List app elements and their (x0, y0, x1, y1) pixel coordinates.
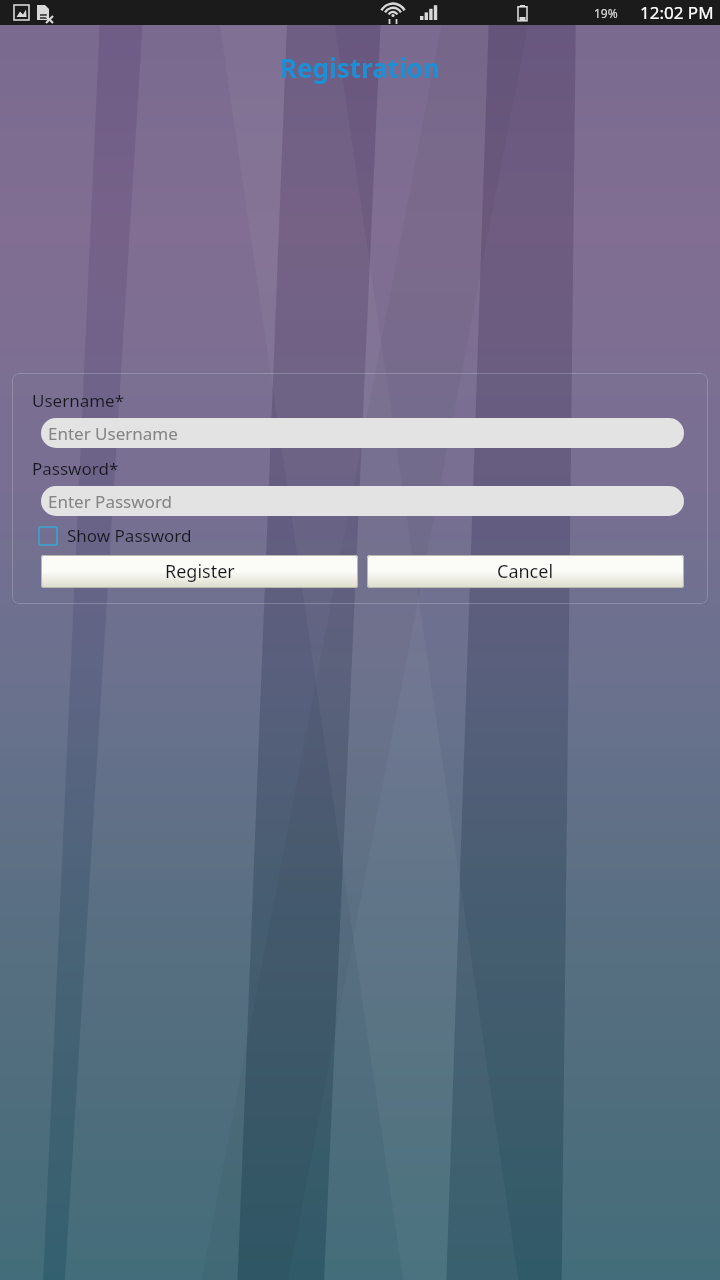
button[interactable]: Enter Password (41, 486, 684, 516)
staticText: Cancel (497, 559, 554, 584)
staticText: Username* (32, 389, 125, 412)
button[interactable]: Show Password (39, 524, 192, 547)
staticText: Registration (0, 50, 720, 85)
staticText: Enter Password (48, 490, 173, 513)
staticText: Show Password (67, 524, 192, 547)
button[interactable]: Enter Username (41, 418, 684, 448)
staticText: Password* (32, 457, 119, 480)
staticText: Register (165, 559, 235, 584)
staticText: 19% (594, 5, 618, 21)
staticText: Enter Username (48, 422, 178, 445)
staticText: 12:02 PM (640, 1, 714, 24)
button[interactable]: Cancel (367, 555, 684, 588)
button[interactable]: Register (41, 555, 358, 588)
